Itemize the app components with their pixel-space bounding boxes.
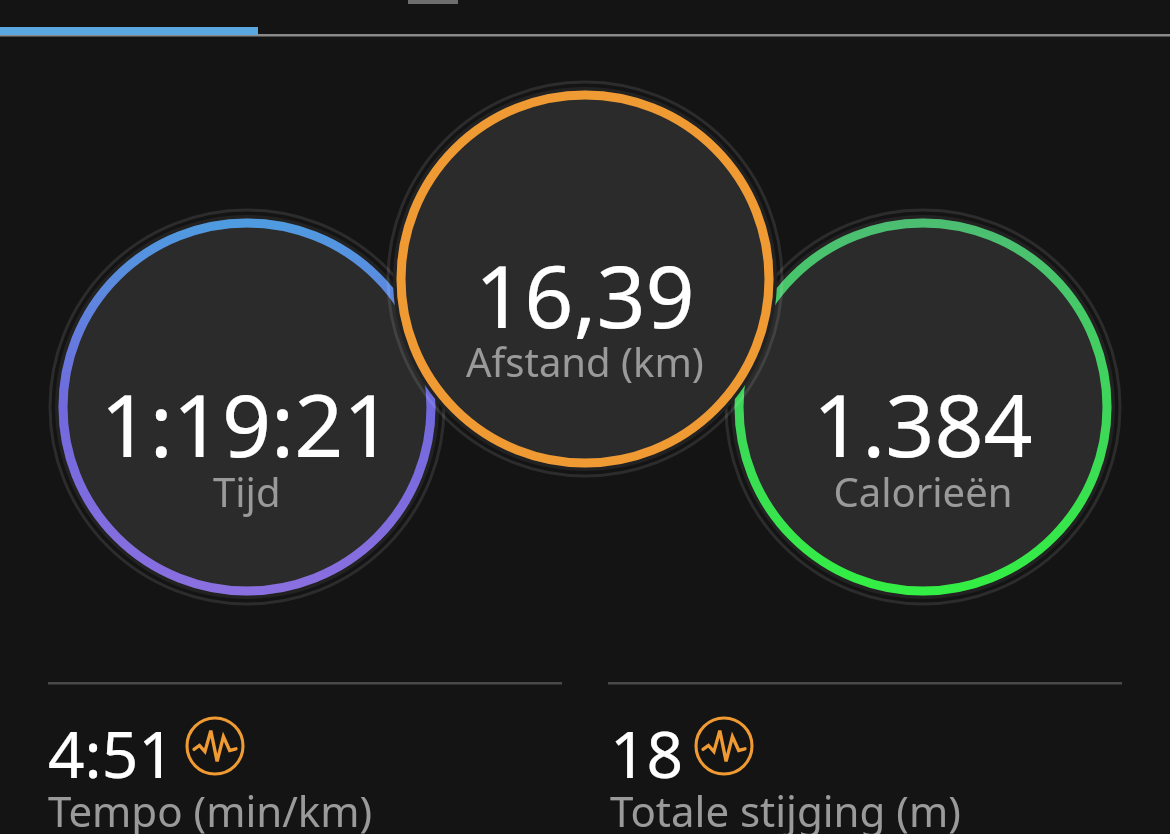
button[interactable]: Workout summary xyxy=(0,0,1170,834)
